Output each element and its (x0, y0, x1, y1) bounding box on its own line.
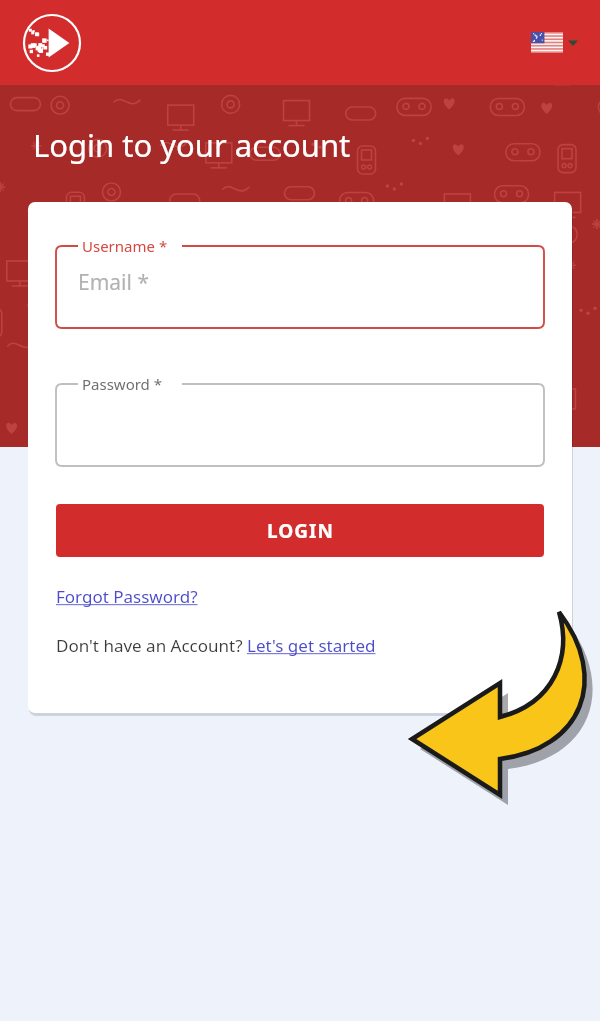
button[interactable]: App logo (22, 13, 82, 73)
button[interactable]: Forgot Password? (56, 585, 198, 608)
staticText: Let's get started (247, 634, 376, 657)
button[interactable]: Username * (56, 236, 544, 328)
staticText: Username * (82, 236, 168, 256)
staticText: Email * (78, 268, 149, 297)
staticText: Don't have an Account? (56, 634, 247, 657)
button[interactable]: Let's get started (247, 634, 376, 657)
staticText: Forgot Password? (56, 585, 198, 608)
staticText: LOGIN (267, 518, 334, 544)
button[interactable]: Password * (56, 374, 544, 466)
button[interactable]: Change language (525, 26, 584, 59)
staticText: Login to your account (33, 124, 351, 166)
staticText: Password * (82, 374, 163, 394)
button[interactable]: LOGIN (56, 504, 544, 557)
